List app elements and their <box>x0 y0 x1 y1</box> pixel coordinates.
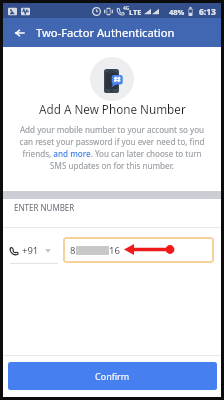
staticText: 48% <box>169 7 185 17</box>
staticText: ENTER NUMBER <box>14 202 75 213</box>
staticText: 4G <box>123 5 130 12</box>
staticText: Confirm <box>95 370 130 382</box>
staticText: Add your mobile number to your account s… <box>8 124 216 171</box>
button[interactable]: Back <box>3 18 36 47</box>
button[interactable]: Confirm <box>8 362 217 390</box>
staticText: 16 <box>109 244 120 257</box>
staticText: +91 <box>22 244 39 257</box>
staticText: 6:13 <box>199 6 216 18</box>
staticText: Add A New Phone Number <box>39 101 186 117</box>
button[interactable]: 8 <box>63 237 214 263</box>
staticText: LTE <box>129 7 142 17</box>
staticText: Two-Factor Authentication <box>36 25 175 40</box>
button[interactable]: Country code +91 <box>5 237 60 263</box>
staticText: 8 <box>70 244 76 257</box>
